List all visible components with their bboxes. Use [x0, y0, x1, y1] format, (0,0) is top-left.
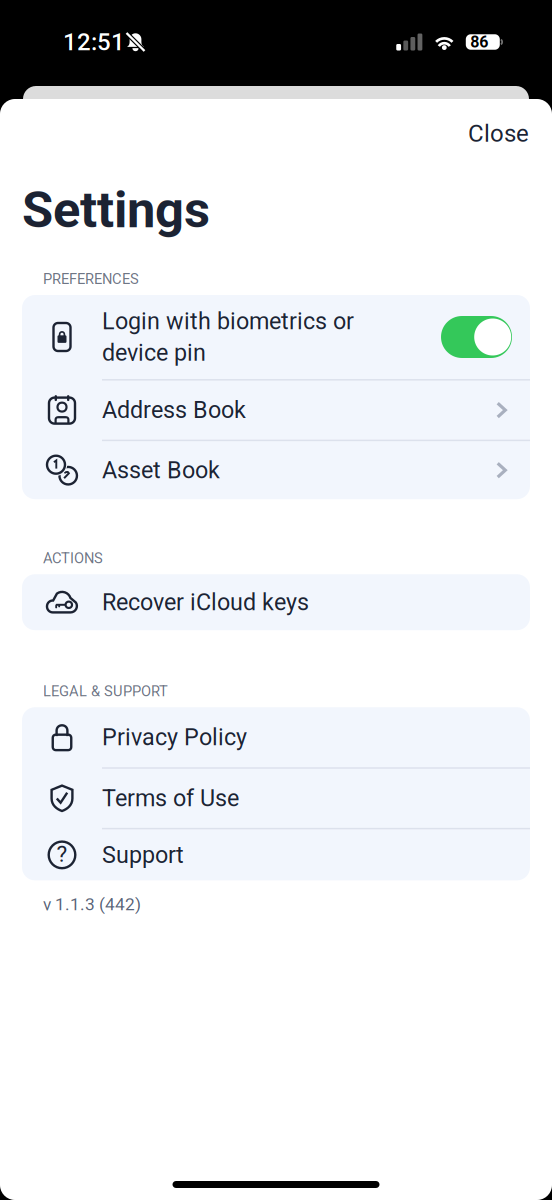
staticText: Close: [468, 119, 529, 147]
button[interactable]: Close: [456, 109, 541, 157]
button[interactable]: Address Book: [22, 381, 530, 440]
staticText: Login with biometrics or: [102, 308, 354, 335]
staticText: 12:51: [63, 28, 125, 56]
staticText: Terms of Use: [102, 785, 239, 812]
staticText: PREFERENCES: [43, 270, 139, 288]
button[interactable]: Recover iCloud keys: [22, 574, 530, 630]
button[interactable]: Login with biometrics or: [22, 295, 530, 379]
button[interactable]: ?: [22, 829, 530, 880]
staticText: Privacy Policy: [102, 723, 247, 751]
staticText: Recover iCloud keys: [102, 588, 309, 616]
staticText: device pin: [102, 339, 206, 366]
button[interactable]: Privacy Policy: [22, 707, 530, 767]
button[interactable]: Asset Book: [22, 441, 530, 499]
staticText: 86: [470, 33, 488, 51]
staticText: v 1.1.3 (442): [43, 894, 141, 914]
staticText: Address Book: [102, 396, 246, 424]
staticText: Asset Book: [102, 456, 220, 484]
staticText: LEGAL & SUPPORT: [43, 683, 168, 700]
button[interactable]: Terms of Use: [22, 769, 530, 828]
staticText: ?: [56, 841, 67, 867]
staticText: Settings: [22, 180, 210, 240]
staticText: Support: [102, 841, 184, 868]
staticText: ACTIONS: [43, 550, 103, 567]
